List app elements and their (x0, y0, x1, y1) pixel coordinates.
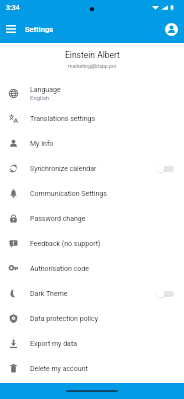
button[interactable]: My Info (0, 131, 184, 156)
staticText: Language (30, 86, 61, 94)
staticText: Synchronize calendar (30, 165, 97, 173)
button[interactable]: Feedback (no support) (0, 231, 184, 256)
staticText: Password change (30, 215, 86, 223)
staticText: Authorisation code (30, 265, 89, 273)
button[interactable]: Communication Settings (0, 181, 184, 206)
button[interactable]: Open navigation menu (2, 20, 20, 38)
button[interactable]: Delete my account (0, 356, 184, 381)
button[interactable]: Authorisation code (0, 256, 184, 281)
staticText: Communication Settings (30, 190, 107, 198)
staticText: Data protection policy (30, 315, 99, 323)
staticText: marketing@klapp.pro (68, 63, 117, 69)
staticText: Einstein Albert (65, 50, 120, 60)
button[interactable]: Data protection policy (0, 306, 184, 331)
button[interactable]: Password change (0, 206, 184, 231)
staticText: Translations settings (30, 115, 96, 123)
staticText: Settings (25, 25, 54, 34)
staticText: Feedback (no support) (30, 240, 101, 248)
button[interactable]: Synchronize calendar (0, 156, 184, 181)
button[interactable]: Account (162, 20, 180, 38)
staticText: 3:34 (6, 4, 20, 12)
staticText: My Info (30, 140, 54, 148)
staticText: Export my data (30, 340, 77, 348)
button[interactable]: Language (0, 81, 184, 106)
staticText: Delete my account (30, 365, 88, 373)
staticText: English (30, 94, 50, 101)
button[interactable]: Export my data (0, 331, 184, 356)
staticText: Dark Theme (30, 290, 68, 298)
button[interactable]: Dark Theme (0, 281, 184, 306)
button[interactable]: Translations settings (0, 106, 184, 131)
